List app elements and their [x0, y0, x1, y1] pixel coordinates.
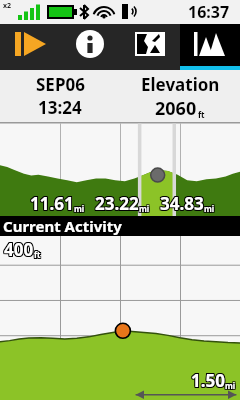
- staticText: mi: [204, 202, 215, 213]
- staticText: mi: [225, 379, 236, 390]
- staticText: 1.50: [191, 370, 225, 393]
- staticText: 1.50: [190, 370, 224, 393]
- staticText: ft: [35, 248, 42, 259]
- staticText: 400: [4, 239, 34, 262]
- staticText: mi: [204, 203, 215, 214]
- staticText: mi: [203, 204, 214, 215]
- staticText: mi: [205, 202, 216, 213]
- staticText: 400: [4, 237, 34, 260]
- staticText: mi: [204, 204, 215, 215]
- staticText: mi: [225, 380, 236, 391]
- staticText: 1.50: [190, 368, 224, 391]
- button[interactable]: Information: [60, 24, 120, 70]
- staticText: mi: [226, 381, 237, 392]
- staticText: 1.50: [192, 370, 226, 393]
- staticText: mi: [139, 204, 150, 215]
- staticText: 11.61: [30, 191, 74, 214]
- staticText: 23.22: [95, 193, 139, 216]
- staticText: 1.50: [191, 369, 225, 392]
- staticText: 34.83: [161, 193, 205, 216]
- staticText: mi: [139, 202, 150, 213]
- staticText: mi: [224, 381, 235, 392]
- staticText: mi: [226, 380, 237, 391]
- staticText: 400: [3, 239, 33, 262]
- button[interactable]: Map: [120, 24, 180, 70]
- staticText: 34.83: [159, 192, 203, 215]
- staticText: 23.22: [95, 192, 139, 215]
- staticText: ft: [35, 250, 42, 261]
- staticText: mi: [75, 204, 86, 215]
- staticText: mi: [74, 202, 85, 213]
- staticText: 13:24: [38, 96, 82, 119]
- staticText: 11.61: [29, 191, 73, 214]
- staticText: mi: [138, 202, 149, 213]
- staticText: 34.83: [161, 192, 205, 215]
- staticText: ft: [35, 249, 42, 260]
- staticText: 400: [4, 238, 34, 261]
- staticText: 11.61: [31, 191, 75, 214]
- staticText: 23.22: [94, 192, 138, 215]
- staticText: 1.50: [192, 368, 226, 391]
- staticText: 2060: [155, 96, 197, 121]
- staticText: 1.50: [190, 369, 224, 392]
- staticText: mi: [74, 204, 85, 215]
- staticText: ft: [34, 250, 41, 261]
- staticText: 34.83: [159, 193, 203, 216]
- staticText: mi: [140, 202, 151, 213]
- staticText: mi: [75, 203, 86, 214]
- staticText: ft: [33, 249, 40, 260]
- button[interactable]: Current Activity: [0, 216, 240, 236]
- staticText: mi: [73, 203, 84, 214]
- staticText: Current Activity: [3, 216, 122, 236]
- staticText: ft: [34, 248, 41, 259]
- staticText: mi: [140, 203, 151, 214]
- staticText: mi: [140, 204, 151, 215]
- staticText: ft: [34, 249, 41, 260]
- staticText: 23.22: [94, 191, 138, 214]
- staticText: mi: [203, 202, 214, 213]
- staticText: mi: [138, 203, 149, 214]
- staticText: mi: [139, 203, 150, 214]
- staticText: mi: [138, 204, 149, 215]
- staticText: mi: [205, 204, 216, 215]
- staticText: 11.61: [30, 193, 74, 216]
- staticText: Elevation: [141, 73, 220, 96]
- staticText: mi: [205, 203, 216, 214]
- staticText: ft: [198, 109, 205, 120]
- staticText: mi: [226, 379, 237, 390]
- staticText: 34.83: [160, 193, 204, 216]
- staticText: 23.22: [96, 192, 140, 215]
- staticText: mi: [225, 381, 236, 392]
- staticText: 34.83: [159, 191, 203, 214]
- button[interactable]: Start activity: [0, 24, 60, 70]
- staticText: 400: [5, 239, 35, 262]
- staticText: mi: [203, 203, 214, 214]
- button[interactable]: Elevation plot: [180, 24, 240, 70]
- staticText: 34.83: [161, 191, 205, 214]
- staticText: 11.61: [29, 192, 73, 215]
- staticText: x2: [3, 1, 12, 11]
- staticText: 34.83: [160, 192, 204, 215]
- staticText: mi: [75, 202, 86, 213]
- staticText: 23.22: [95, 191, 139, 214]
- staticText: ft: [33, 250, 40, 261]
- staticText: 16:37: [188, 1, 230, 23]
- staticText: mi: [73, 204, 84, 215]
- staticText: 400: [5, 238, 35, 261]
- staticText: 34.83: [160, 191, 204, 214]
- staticText: 400: [3, 238, 33, 261]
- staticText: mi: [74, 203, 85, 214]
- staticText: mi: [224, 379, 235, 390]
- staticText: ft: [33, 248, 40, 259]
- staticText: 11.61: [29, 193, 73, 216]
- staticText: 400: [3, 237, 33, 260]
- staticText: 11.61: [30, 192, 74, 215]
- staticText: 1.50: [191, 368, 225, 391]
- staticText: mi: [73, 202, 84, 213]
- staticText: SEP06: [36, 73, 85, 96]
- staticText: 23.22: [94, 193, 138, 216]
- staticText: 23.22: [96, 191, 140, 214]
- staticText: 11.61: [31, 192, 75, 215]
- staticText: 1.50: [192, 369, 226, 392]
- staticText: 400: [5, 237, 35, 260]
